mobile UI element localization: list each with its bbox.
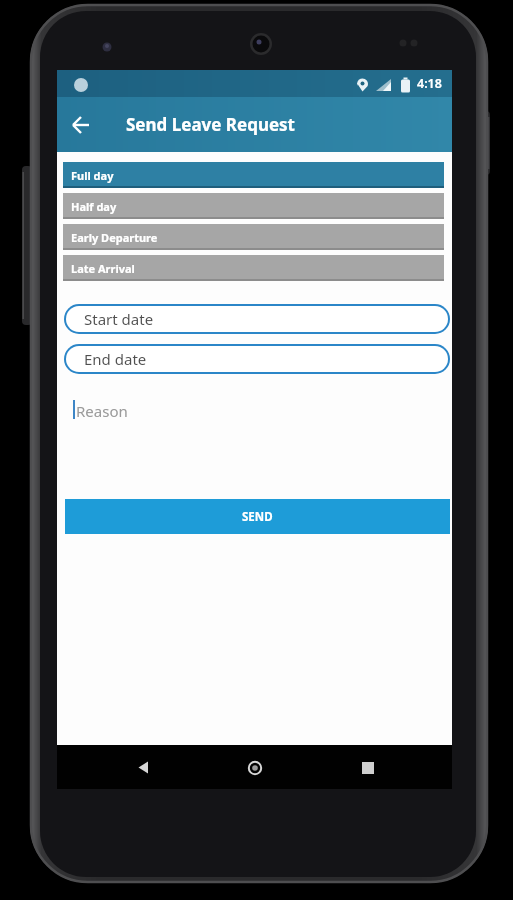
staticText: Send Leave Request (126, 113, 295, 136)
button[interactable]: Full day (63, 162, 444, 188)
button[interactable]: SEND (65, 499, 450, 534)
button[interactable]: Late Arrival (63, 255, 444, 281)
staticText: Start date (84, 309, 154, 329)
button[interactable]: Early Departure (63, 224, 444, 250)
button[interactable]: Start date (64, 304, 450, 334)
button[interactable]: Half day (63, 193, 444, 219)
staticText: End date (84, 349, 147, 369)
button[interactable] (137, 761, 150, 774)
staticText: Half day (71, 199, 117, 214)
button[interactable] (248, 761, 262, 775)
staticText: SEND (242, 509, 273, 525)
staticText: 4:18 (417, 75, 442, 92)
staticText: Early Departure (71, 230, 158, 245)
staticText: Full day (71, 168, 114, 183)
button[interactable]: Reason (65, 396, 444, 491)
staticText: Late Arrival (71, 261, 135, 276)
button[interactable]: End date (64, 344, 450, 374)
button[interactable] (57, 97, 112, 152)
staticText: Reason (76, 401, 128, 421)
